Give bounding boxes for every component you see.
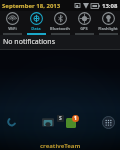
staticText: GPS — [80, 26, 88, 31]
staticText: No notifications — [3, 37, 56, 47]
button[interactable]: Flashlight — [96, 11, 120, 32]
button[interactable]: Phone — [5, 115, 19, 129]
button[interactable]: WiFi — [0, 11, 24, 32]
staticText: S — [59, 115, 62, 122]
staticText: September 18, 2013 — [2, 2, 61, 10]
staticText: Bluetooth — [50, 26, 70, 31]
button[interactable]: Data — [24, 11, 48, 32]
staticText: 1 — [74, 115, 77, 122]
staticText: creativeTeam — [40, 142, 81, 150]
button[interactable]: Gallery — [41, 115, 55, 129]
staticText: WiFi — [8, 26, 17, 31]
button[interactable]: Messages, 1 new — [66, 115, 79, 128]
staticText: 13:08 — [102, 2, 118, 10]
button[interactable]: GPS — [72, 11, 96, 32]
staticText: Data — [31, 26, 41, 31]
staticText: Flashlight — [98, 26, 118, 31]
button[interactable]: Store — [57, 115, 64, 122]
button[interactable]: All apps — [101, 115, 115, 129]
button[interactable]: Bluetooth — [48, 11, 72, 32]
